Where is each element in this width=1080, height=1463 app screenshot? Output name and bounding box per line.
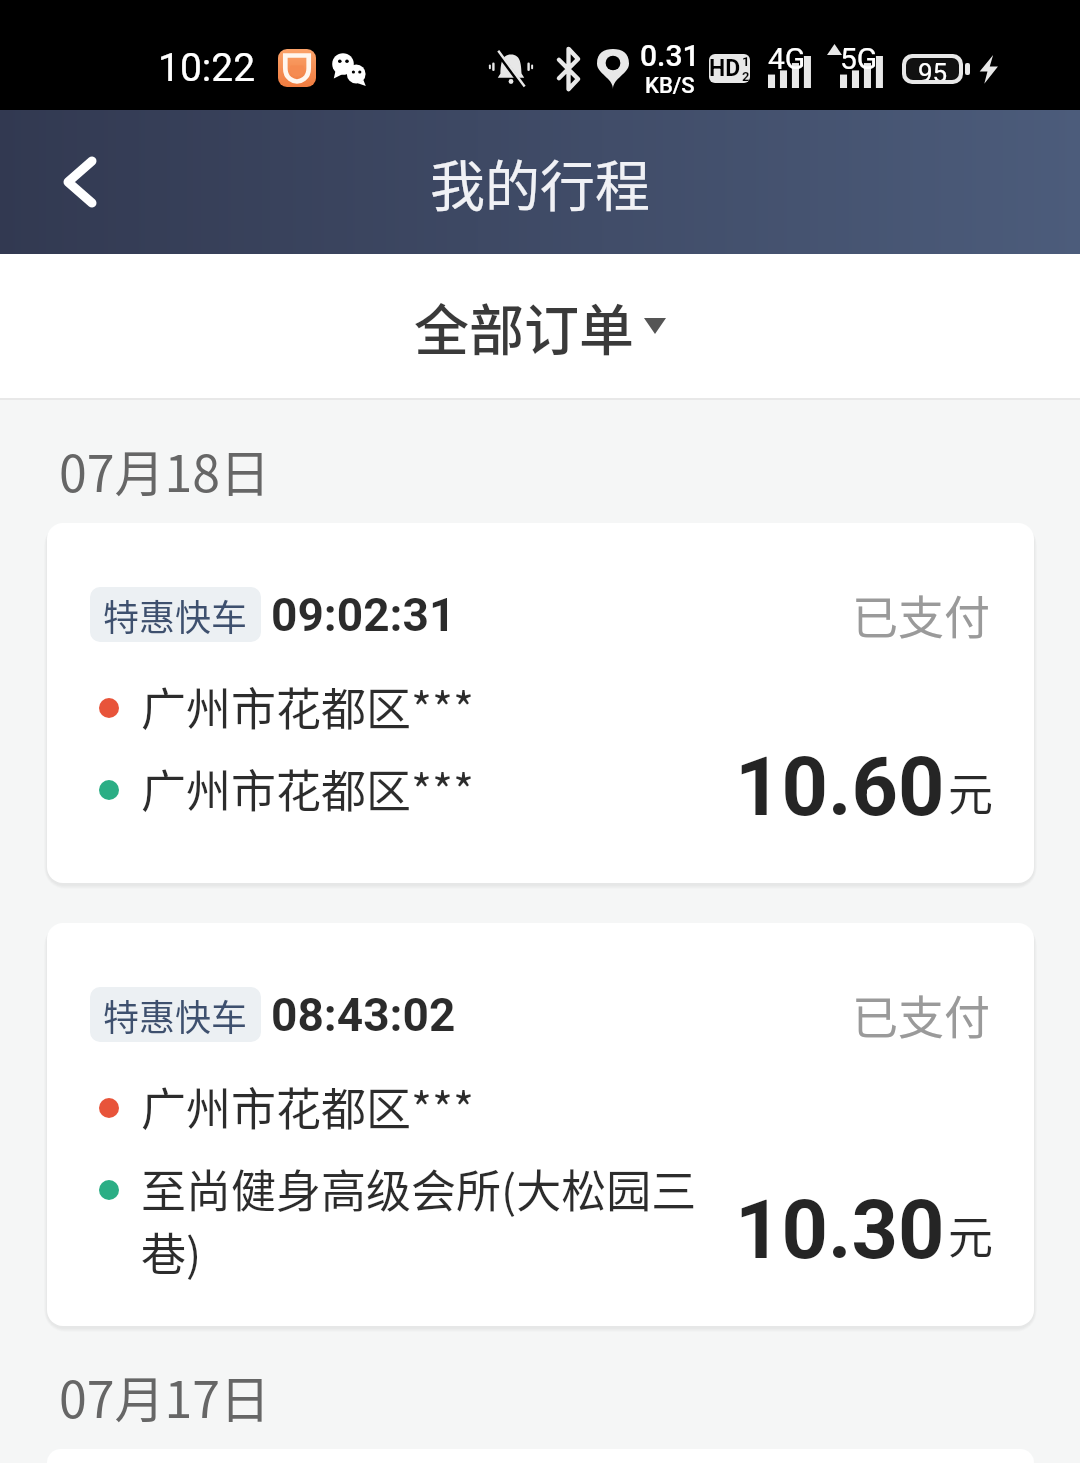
staticText: 元 bbox=[948, 759, 994, 824]
staticText: 元 bbox=[948, 1202, 994, 1267]
button[interactable]: 特惠快车 bbox=[47, 923, 1034, 1326]
staticText: 广州市花都区*** bbox=[141, 674, 475, 739]
staticText: 已支付 bbox=[852, 981, 990, 1048]
button[interactable]: 全部订单 bbox=[406, 278, 674, 374]
staticText: 10.60 bbox=[735, 740, 945, 835]
staticText: 09:02:31 bbox=[271, 588, 456, 642]
button[interactable]: Back bbox=[42, 144, 118, 220]
staticText: 5G bbox=[840, 41, 878, 76]
staticText: 我的行程 bbox=[430, 142, 651, 222]
staticText: 已支付 bbox=[852, 581, 990, 648]
staticText: 全部订单 bbox=[414, 286, 635, 366]
staticText: 07月18日 bbox=[59, 434, 270, 506]
staticText: 95 bbox=[918, 58, 948, 80]
staticText: 08:43:02 bbox=[271, 988, 456, 1042]
staticText: 4G bbox=[768, 41, 806, 76]
staticText: 广州市花都区*** bbox=[141, 1074, 475, 1139]
staticText: 特惠快车 bbox=[103, 989, 248, 1041]
button[interactable]: 特惠快车 bbox=[47, 523, 1034, 883]
staticText: 0.31 bbox=[640, 38, 700, 73]
staticText: 特惠快车 bbox=[103, 589, 248, 641]
staticText: 2 bbox=[742, 69, 750, 83]
staticText: 至尚健身高级会所(大松园三巷) bbox=[141, 1156, 712, 1284]
staticText: 1 bbox=[742, 54, 750, 69]
staticText: 10:22 bbox=[158, 45, 256, 91]
staticText: HD bbox=[709, 55, 741, 82]
staticText: 10.30 bbox=[735, 1183, 945, 1278]
staticText: KB/S bbox=[645, 73, 695, 99]
staticText: 广州市花都区*** bbox=[141, 756, 475, 821]
staticText: 07月17日 bbox=[59, 1360, 270, 1432]
